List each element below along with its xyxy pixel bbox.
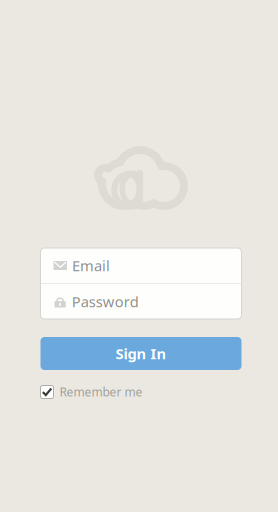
- button[interactable]: Sign In: [40, 337, 241, 370]
- staticText: Password: [72, 292, 139, 311]
- staticText: Remember me: [59, 384, 142, 400]
- button[interactable]: Remember me: [40, 384, 241, 400]
- staticText: Sign In: [115, 344, 166, 363]
- staticText: Email: [72, 256, 110, 275]
